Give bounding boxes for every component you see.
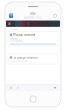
staticText: second blue link line	[10, 40, 23, 42]
staticText: small blue link	[10, 38, 18, 40]
staticText: Title	[30, 12, 36, 15]
button[interactable]: More	[51, 84, 58, 91]
staticText: To accept account	[13, 56, 38, 59]
button[interactable]: Please remind	[8, 31, 58, 46]
button[interactable]: Forward	[14, 84, 21, 91]
staticText: subtitle line	[24, 16, 42, 19]
staticText: helper copy underneath	[10, 60, 28, 62]
staticText: Please remind	[13, 33, 35, 37]
staticText: caption label text	[9, 28, 19, 30]
button[interactable]: Account	[50, 11, 60, 20]
button[interactable]: To accept account	[8, 54, 58, 64]
button[interactable]: Back	[7, 84, 14, 91]
button[interactable]: Menu	[6, 11, 16, 20]
